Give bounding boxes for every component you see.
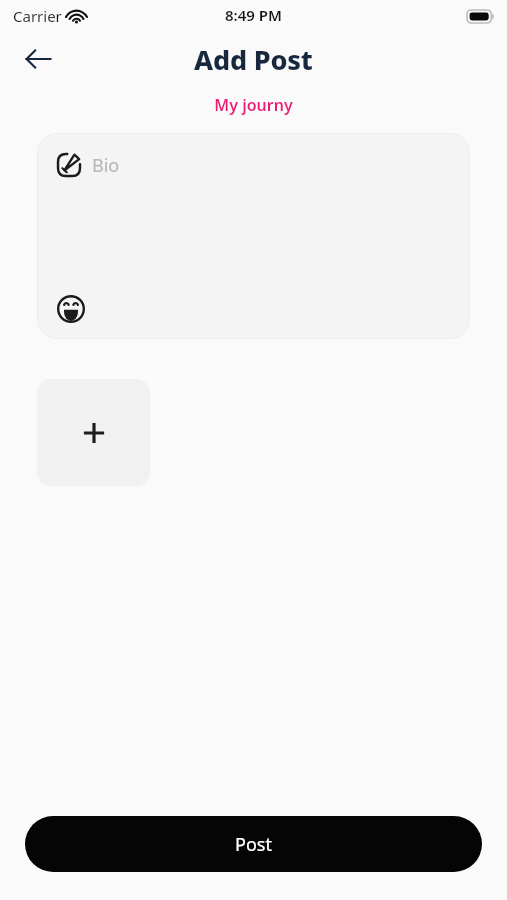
staticText: Post: [235, 832, 272, 857]
staticText: 8:49 PM: [225, 5, 282, 25]
staticText: Bio: [92, 153, 120, 178]
staticText: Add Post: [194, 41, 313, 78]
button[interactable]: Bio: [37, 133, 470, 339]
button[interactable]: Post: [25, 816, 482, 872]
staticText: My journy: [0, 94, 507, 116]
button[interactable]: Add photo: [37, 379, 150, 486]
button[interactable]: Back: [14, 35, 62, 83]
button[interactable]: Insert emoji: [53, 291, 89, 327]
staticText: Carrier: [13, 6, 62, 26]
